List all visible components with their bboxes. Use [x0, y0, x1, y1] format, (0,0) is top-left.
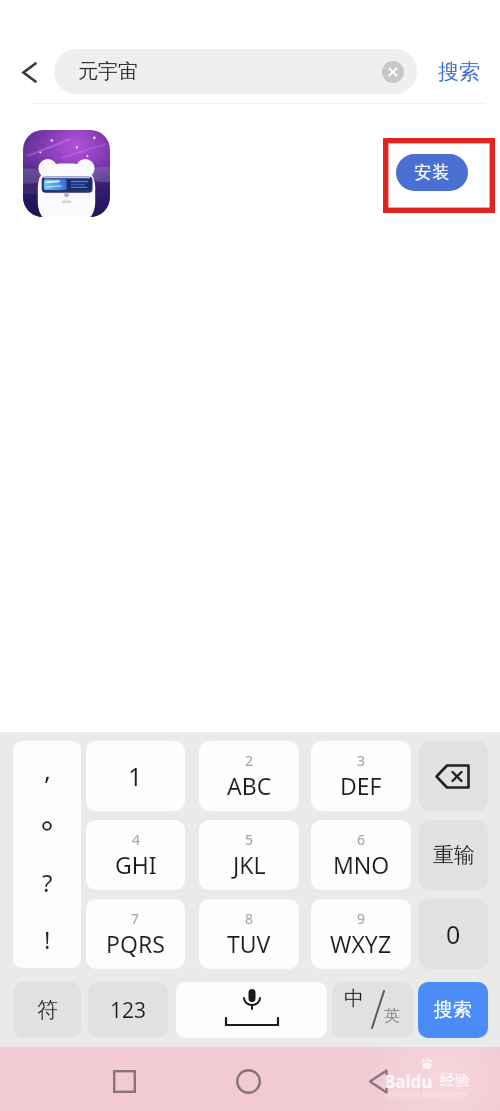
- button[interactable]: 9: [311, 899, 411, 969]
- button[interactable]: 7: [86, 899, 185, 969]
- button[interactable]: 中: [332, 982, 413, 1038]
- button[interactable]: [382, 61, 404, 83]
- button[interactable]: 4: [86, 820, 185, 890]
- staticText: 6: [357, 830, 366, 849]
- staticText: 英: [384, 1006, 400, 1026]
- staticText: 经验: [440, 1071, 470, 1090]
- staticText: 7: [131, 909, 140, 928]
- button[interactable]: ,: [13, 741, 81, 968]
- button[interactable]: 符: [13, 982, 81, 1038]
- button[interactable]: 1: [86, 741, 185, 811]
- staticText: 搜索: [434, 998, 472, 1022]
- staticText: !: [44, 923, 51, 956]
- staticText: TUV: [227, 928, 271, 959]
- staticText: 重输: [433, 842, 475, 868]
- button[interactable]: [10, 54, 48, 90]
- staticText: 元宇宙: [78, 59, 138, 84]
- button[interactable]: 0: [419, 899, 488, 969]
- button[interactable]: 8: [199, 899, 299, 969]
- button[interactable]: 搜索: [418, 982, 488, 1038]
- staticText: 搜索: [438, 59, 480, 85]
- staticText: 中: [344, 986, 364, 1011]
- staticText: 4: [132, 830, 141, 849]
- staticText: 8: [245, 909, 254, 928]
- button[interactable]: 搜索: [427, 49, 490, 94]
- button[interactable]: [363, 1066, 393, 1096]
- button[interactable]: 3: [311, 741, 411, 811]
- staticText: 2: [245, 751, 254, 770]
- staticText: ?: [42, 866, 53, 899]
- staticText: JKL: [233, 849, 266, 880]
- staticText: 安装: [414, 162, 450, 183]
- button[interactable]: 重输: [419, 820, 488, 890]
- button[interactable]: 5: [199, 820, 299, 890]
- button[interactable]: 6: [311, 820, 411, 890]
- staticText: WXYZ: [330, 928, 392, 959]
- staticText: MNO: [333, 849, 390, 880]
- staticText: 符: [37, 997, 58, 1023]
- staticText: PQRS: [106, 928, 165, 959]
- button[interactable]: [108, 1066, 140, 1096]
- button[interactable]: 123: [88, 982, 168, 1038]
- staticText: DEF: [340, 770, 382, 801]
- staticText: ,: [44, 752, 51, 787]
- button[interactable]: 元宇宙: [54, 49, 417, 94]
- button[interactable]: [419, 741, 488, 811]
- staticText: 9: [357, 909, 366, 928]
- staticText: 123: [110, 996, 147, 1025]
- staticText: Baidu: [384, 1070, 433, 1093]
- staticText: ABC: [227, 770, 272, 801]
- button[interactable]: [176, 982, 327, 1038]
- button[interactable]: [232, 1066, 264, 1096]
- staticText: jingyan.baidu.com: [389, 1087, 467, 1099]
- button[interactable]: [23, 130, 110, 217]
- staticText: 3: [357, 751, 366, 770]
- staticText: 0: [446, 917, 461, 951]
- staticText: 1: [128, 759, 143, 793]
- button[interactable]: 2: [199, 741, 299, 811]
- staticText: GHI: [115, 849, 157, 880]
- button[interactable]: 安装: [396, 154, 468, 191]
- staticText: 5: [245, 830, 254, 849]
